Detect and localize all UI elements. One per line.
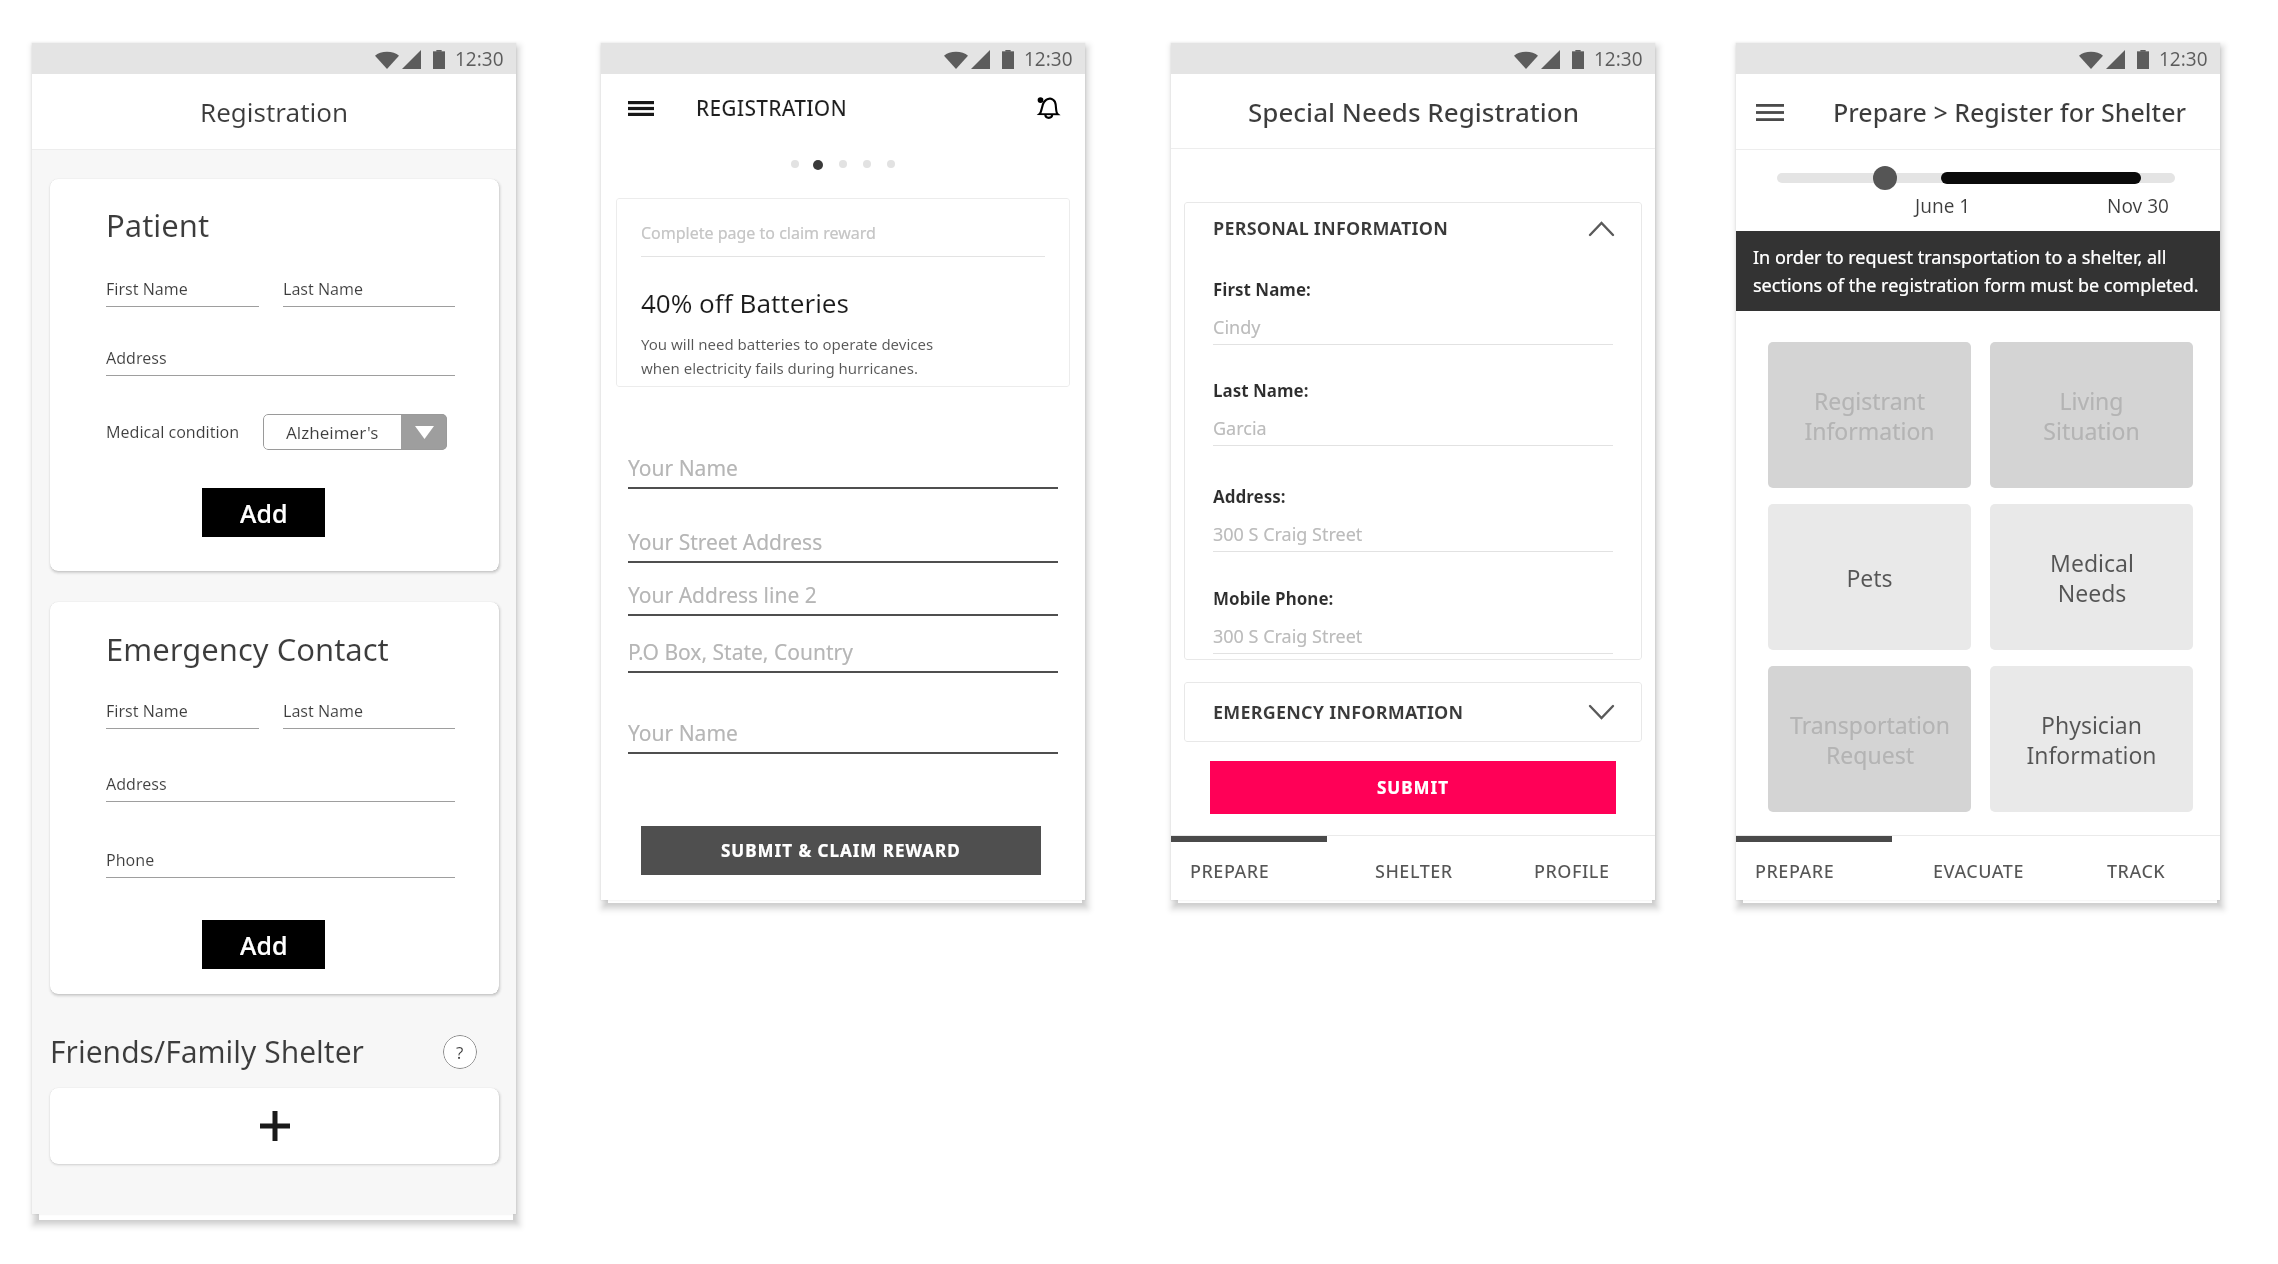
button[interactable]: Living Situation <box>1990 342 2193 488</box>
staticText: Registrant Information <box>1804 385 1935 446</box>
staticText: Your Name <box>628 719 738 748</box>
staticText: PREPARE <box>1190 859 1270 884</box>
staticText: 12:30 <box>1024 46 1073 72</box>
staticText: Phone <box>106 849 155 871</box>
staticText: Friends/Family Shelter <box>50 1031 443 1072</box>
button[interactable]: Medical Needs <box>1990 504 2193 650</box>
button[interactable]: Notifications <box>1029 91 1063 125</box>
staticText: SUBMIT & CLAIM REWARD <box>721 839 961 862</box>
button[interactable]: Menu <box>628 92 660 124</box>
staticText: Add <box>240 928 288 962</box>
staticText: Living Situation <box>2043 385 2140 446</box>
staticText: 300 S Craig Street <box>1213 624 1363 649</box>
button[interactable]: Date range slider <box>1873 166 1897 190</box>
button[interactable]: SUBMIT & CLAIM REWARD <box>641 826 1041 875</box>
button[interactable]: PERSONAL INFORMATION <box>1213 216 1613 241</box>
button[interactable]: Add <box>202 920 325 969</box>
staticText: Prepare > Register for Shelter <box>1833 95 2187 129</box>
staticText: In order to request transportation to a … <box>1753 245 2199 297</box>
button[interactable]: Transportation Request <box>1768 666 1971 812</box>
button[interactable]: EMERGENCY INFORMATION <box>1184 682 1642 742</box>
button[interactable]: PROFILE <box>1494 842 1655 900</box>
button[interactable]: Alzheimer's <box>263 414 447 450</box>
staticText: ? <box>456 1041 464 1064</box>
staticText: Medical Needs <box>2050 547 2134 608</box>
staticText: Special Needs Registration <box>1248 94 1579 129</box>
staticText: PROFILE <box>1534 859 1610 884</box>
staticText: SUBMIT <box>1377 776 1449 799</box>
staticText: PERSONAL INFORMATION <box>1213 216 1590 241</box>
staticText: 12:30 <box>1594 46 1643 72</box>
staticText: Nov 30 <box>2107 193 2169 219</box>
staticText: Address <box>106 773 167 795</box>
staticText: EVACUATE <box>1933 859 2025 884</box>
button[interactable]: PREPARE <box>1736 842 1898 900</box>
staticText: Registration <box>200 94 349 129</box>
staticText: Your Street Address <box>628 528 823 557</box>
staticText: Complete page to claim reward <box>641 222 876 244</box>
staticText: Your Name <box>628 454 738 483</box>
staticText: First Name <box>106 278 188 300</box>
button[interactable]: Physician Information <box>1990 666 2193 812</box>
staticText: First Name <box>106 700 188 722</box>
staticText: Address <box>106 347 167 369</box>
staticText: SHELTER <box>1375 859 1453 884</box>
staticText: P.O Box, State, Country <box>628 638 853 667</box>
staticText: 300 S Craig Street <box>1213 522 1363 547</box>
staticText: Pets <box>1846 562 1893 593</box>
staticText: 12:30 <box>455 46 504 72</box>
staticText: You will need batteries to operate devic… <box>641 334 934 378</box>
button[interactable]: Add shelter <box>50 1088 499 1164</box>
button[interactable]: SUBMIT <box>1210 761 1616 814</box>
staticText: Last Name <box>283 700 364 722</box>
button[interactable]: Menu <box>1753 95 1787 129</box>
button[interactable]: TRACK <box>2059 842 2220 900</box>
staticText: Last Name: <box>1213 379 1309 402</box>
staticText: 12:30 <box>2159 46 2208 72</box>
staticText: REGISTRATION <box>696 94 847 123</box>
staticText: Garcia <box>1213 416 1267 441</box>
staticText: Transportation Request <box>1790 709 1950 770</box>
staticText: Your Address line 2 <box>628 581 817 610</box>
staticText: Address: <box>1213 485 1286 508</box>
staticText: Mobile Phone: <box>1213 587 1334 610</box>
staticText: First Name: <box>1213 278 1311 301</box>
button[interactable]: PREPARE <box>1171 842 1333 900</box>
button[interactable]: Add <box>202 488 325 537</box>
staticText: 40% off Batteries <box>641 285 849 320</box>
staticText: Physician Information <box>2026 709 2157 770</box>
staticText: PREPARE <box>1755 859 1835 884</box>
staticText: Last Name <box>283 278 364 300</box>
staticText: Cindy <box>1213 315 1261 340</box>
staticText: EMERGENCY INFORMATION <box>1213 700 1590 725</box>
staticText: TRACK <box>2107 859 2166 884</box>
button[interactable]: EVACUATE <box>1898 842 2059 900</box>
staticText: June 1 <box>1915 193 1971 219</box>
staticText: Alzheimer's <box>286 421 379 444</box>
button[interactable]: SHELTER <box>1333 842 1494 900</box>
button[interactable]: Help <box>443 1035 477 1069</box>
button[interactable]: Pets <box>1768 504 1971 650</box>
staticText: Medical condition <box>106 421 240 443</box>
staticText: Add <box>240 496 288 530</box>
button[interactable]: Registrant Information <box>1768 342 1971 488</box>
staticText: Emergency Contact <box>106 628 389 670</box>
staticText: Patient <box>106 204 210 246</box>
